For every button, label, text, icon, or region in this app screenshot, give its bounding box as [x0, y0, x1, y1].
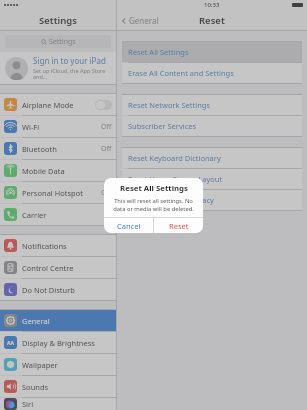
staticText: Reset Home Screen Layout	[128, 174, 223, 184]
staticText: Settings	[39, 14, 77, 27]
button[interactable]: Reset Home Screen Layout	[122, 169, 302, 189]
staticText: 10:33	[204, 1, 220, 9]
staticText: This will reset all settings. No data or…	[110, 197, 197, 212]
staticText: Carrier	[22, 210, 112, 220]
button[interactable]: AA	[0, 332, 116, 353]
button[interactable]: Airplane Mode	[0, 94, 116, 115]
staticText: Reset Keyboard Dictionary	[128, 153, 221, 163]
button[interactable]: Reset Network Settings	[122, 95, 302, 115]
button[interactable]: Do Not Disturb	[0, 279, 116, 300]
button[interactable]: Notifications	[0, 235, 116, 256]
button[interactable]: Reset All Settings	[122, 42, 302, 62]
staticText: General	[22, 316, 112, 326]
staticText: Off	[101, 122, 112, 132]
staticText: Control Centre	[22, 263, 112, 273]
button[interactable]: Reset	[154, 218, 203, 233]
staticText: Notifications	[22, 241, 112, 251]
button[interactable]: Carrier	[0, 204, 116, 225]
button[interactable]: Wi-Fi	[0, 116, 116, 137]
staticText: Display & Brightness	[22, 338, 112, 348]
button[interactable]: General	[0, 310, 116, 331]
button[interactable]: Back to General	[121, 15, 159, 26]
button[interactable]: Reset Keyboard Dictionary	[122, 148, 302, 168]
staticText: Personal Hotspot	[22, 188, 101, 198]
staticText: Bluetooth	[22, 144, 101, 154]
staticText: Reset All Settings	[128, 47, 189, 57]
staticText: Off	[101, 188, 112, 198]
button[interactable]: Personal Hotspot	[0, 182, 116, 203]
staticText: Wallpaper	[22, 360, 112, 370]
button[interactable]: Subscriber Services	[122, 116, 302, 136]
staticText: Sign in to your iPad	[33, 55, 106, 66]
button[interactable]: Siri	[0, 398, 116, 410]
staticText: Mobile Data	[22, 166, 112, 176]
button[interactable]: Wallpaper	[0, 354, 116, 375]
staticText: AA	[7, 339, 15, 346]
button[interactable]: Sign in to your iPad	[0, 52, 116, 84]
button[interactable]: Mobile Data	[0, 160, 116, 181]
staticText: Settings	[49, 37, 76, 47]
staticText: Do Not Disturb	[22, 285, 112, 295]
button[interactable]: Cancel	[104, 218, 153, 233]
staticText: Reset Location & Privacy	[128, 195, 214, 205]
staticText: Airplane Mode	[22, 100, 95, 110]
staticText: Off	[101, 144, 112, 154]
staticText: Siri	[22, 399, 112, 409]
staticText: Sounds	[22, 382, 112, 392]
staticText: Subscriber Services	[128, 121, 197, 131]
staticText: Reset	[199, 14, 225, 27]
staticText: Cancel	[117, 221, 141, 231]
button[interactable]: Bluetooth	[0, 138, 116, 159]
button[interactable]: Control Centre	[0, 257, 116, 278]
staticText: Wi-Fi	[22, 122, 101, 132]
staticText: Reset All Settings	[120, 183, 188, 194]
button[interactable]: Settings	[5, 35, 111, 48]
staticText: Set up iCloud, the App Store and…	[33, 67, 111, 81]
staticText: Erase All Content and Settings	[128, 68, 234, 78]
button[interactable]: Erase All Content and Settings	[122, 63, 302, 83]
button[interactable]: Reset Location & Privacy	[122, 190, 302, 210]
staticText: Reset	[169, 221, 189, 231]
button[interactable]: Sounds	[0, 376, 116, 397]
staticText: General	[129, 15, 159, 26]
button[interactable]	[95, 100, 112, 110]
staticText: Reset Network Settings	[128, 100, 211, 110]
